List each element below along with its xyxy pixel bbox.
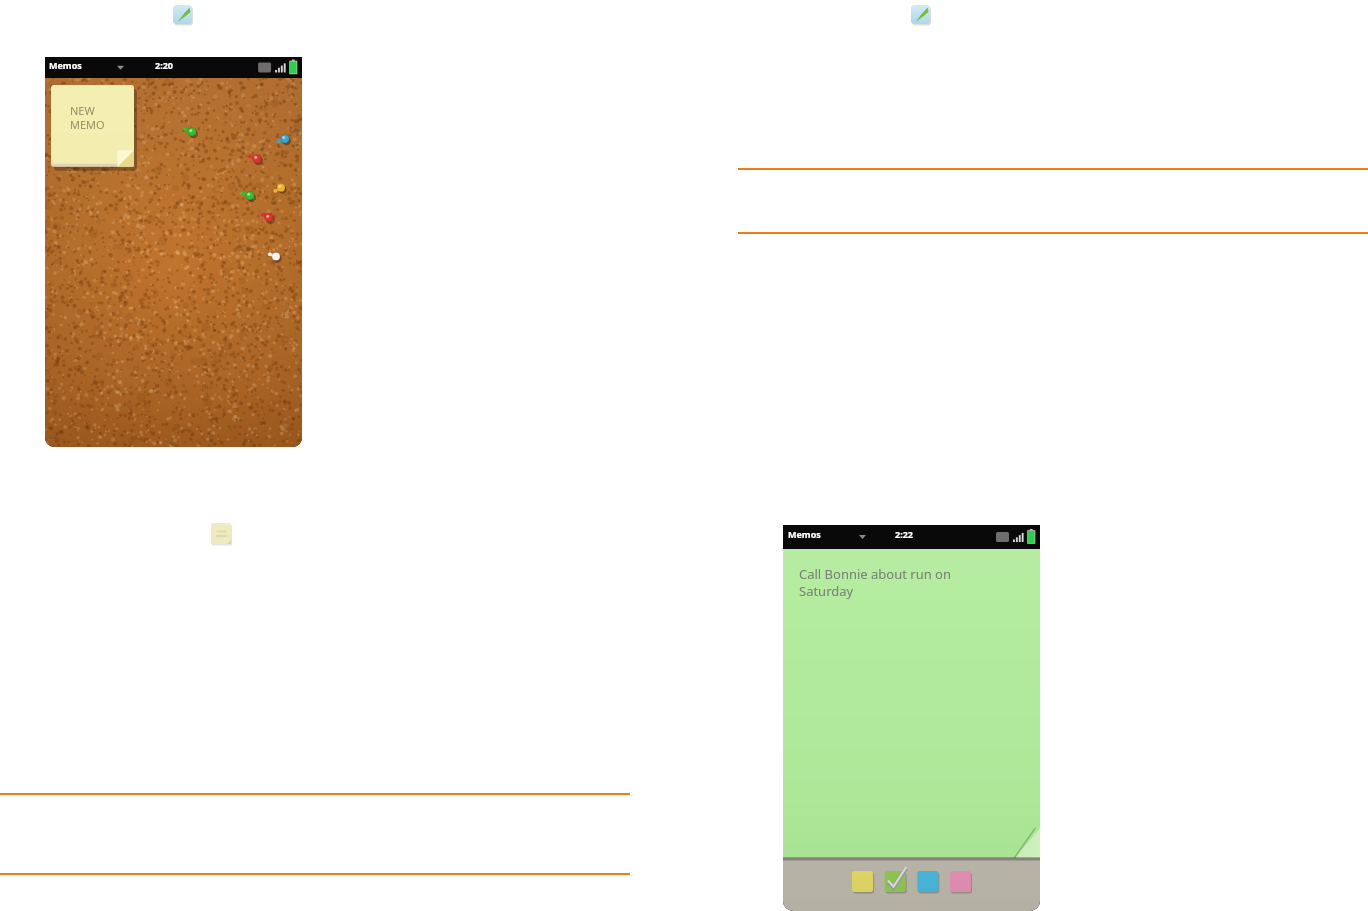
- staticText: Call Bonnie about run on Saturday: [799, 565, 999, 600]
- staticText: 2:20: [155, 59, 173, 71]
- staticText: Memos: [788, 528, 821, 540]
- button[interactable]: Memos app icon: [908, 2, 933, 27]
- button[interactable]: New memo thumbnail: [211, 523, 233, 546]
- staticText: 2:22: [895, 528, 913, 540]
- button[interactable]: Call Bonnie about run on Saturday: [799, 565, 999, 615]
- staticText: Memos: [49, 59, 82, 71]
- button[interactable]: New memo: [52, 85, 132, 163]
- staticText: NEW MEMO: [70, 103, 105, 132]
- button[interactable]: Memos app icon: [170, 2, 195, 27]
